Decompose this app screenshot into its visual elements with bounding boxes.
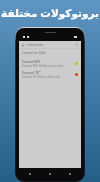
staticText: Forward BT: Wireless Bluetooth — [22, 75, 61, 79]
button[interactable]: Forward "BT" — [19, 69, 81, 80]
staticText: Connection Style — [22, 51, 46, 55]
staticText: Forward WiFi — [22, 60, 41, 64]
other: Search — [75, 43, 79, 47]
button[interactable]: Navigation menu — [19, 41, 81, 48]
staticText: Forward "BT" — [22, 71, 41, 75]
staticText: بروتوكولات مختلفة — [0, 6, 100, 20]
staticText: Forward WiFi: Mobile and wireless — [22, 64, 64, 68]
button[interactable]: Forward WiFi — [19, 58, 81, 69]
other: Navigation menu — [21, 43, 25, 47]
staticText: Connection — [27, 43, 44, 47]
